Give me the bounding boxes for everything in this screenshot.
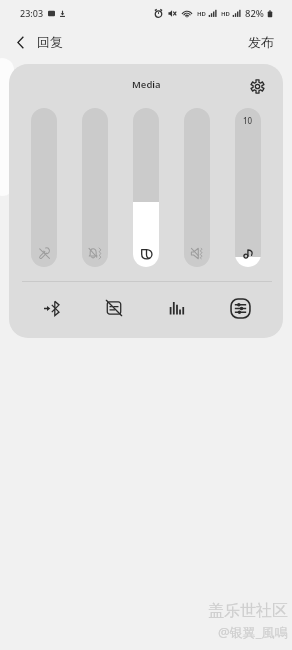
staticText: 回复 [37, 34, 63, 50]
staticText: 盖乐世社区 [208, 601, 288, 621]
button[interactable] [82, 108, 108, 267]
button[interactable] [31, 108, 57, 267]
button[interactable]: Equalizer [157, 288, 197, 328]
other: Back [9, 31, 31, 53]
button[interactable]: Back [9, 31, 63, 53]
button[interactable]: Bluetooth output [31, 288, 71, 328]
staticText: 23:03 [20, 7, 44, 19]
button[interactable]: Subtitles off [94, 288, 134, 328]
button[interactable]: Sound settings [246, 75, 268, 97]
staticText: HD [221, 10, 230, 18]
button[interactable] [184, 108, 210, 267]
staticText: Media [132, 78, 161, 91]
staticText: HD [197, 10, 206, 18]
button[interactable] [133, 108, 159, 267]
staticText: 82% [245, 7, 264, 20]
staticText: @银翼_風鳴 [218, 623, 288, 641]
staticText: 发布 [248, 34, 274, 50]
button[interactable]: Sound quality and effects [220, 288, 260, 328]
staticText: 10 [243, 115, 253, 126]
button[interactable]: 发布 [248, 34, 274, 50]
button[interactable]: 10 [235, 108, 261, 267]
